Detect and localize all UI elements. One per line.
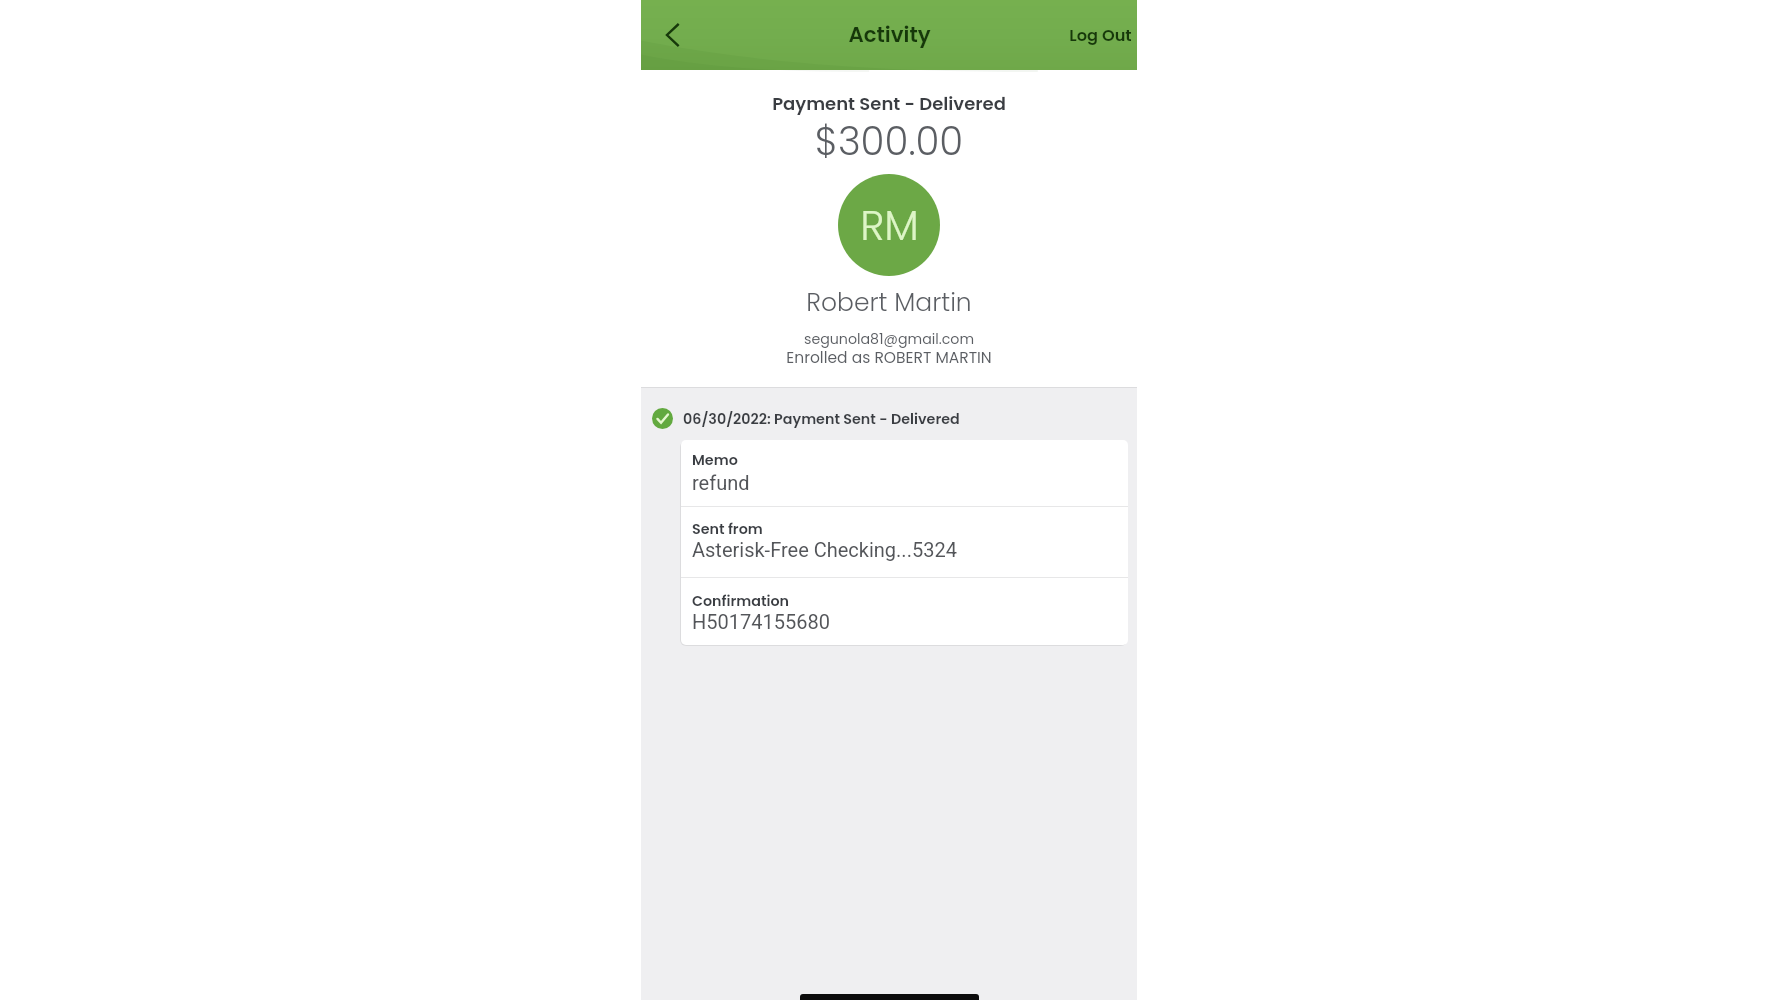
staticText: Enrolled as ROBERT MARTIN [641, 347, 1137, 369]
button[interactable]: Confirmation [681, 577, 1128, 645]
staticText: H50174155680 [692, 610, 830, 633]
button[interactable]: Back [649, 11, 697, 59]
button[interactable]: Robert Martin avatar [838, 174, 940, 276]
staticText: Activity [848, 20, 931, 50]
staticText: Confirmation [692, 591, 790, 611]
staticText: Payment Sent - Delivered [641, 91, 1137, 116]
button[interactable]: 06/30/2022: Payment Sent - Delivered [652, 408, 960, 429]
button[interactable]: Sent from [681, 506, 1128, 577]
staticText: Memo [692, 450, 738, 470]
staticText: 06/30/2022: Payment Sent - Delivered [683, 409, 960, 429]
button[interactable]: Log Out [1064, 10, 1137, 61]
staticText: Sent from [692, 519, 763, 539]
staticText: Asterisk-Free Checking...5324 [692, 538, 957, 561]
button[interactable]: Memo [681, 440, 1128, 506]
staticText: Log Out [1069, 24, 1132, 47]
staticText: RM [860, 197, 919, 254]
staticText: segunola81@gmail.com [641, 329, 1137, 349]
staticText: Robert Martin [641, 285, 1137, 320]
staticText: refund [692, 471, 750, 494]
staticText: $300.00 [641, 114, 1137, 168]
